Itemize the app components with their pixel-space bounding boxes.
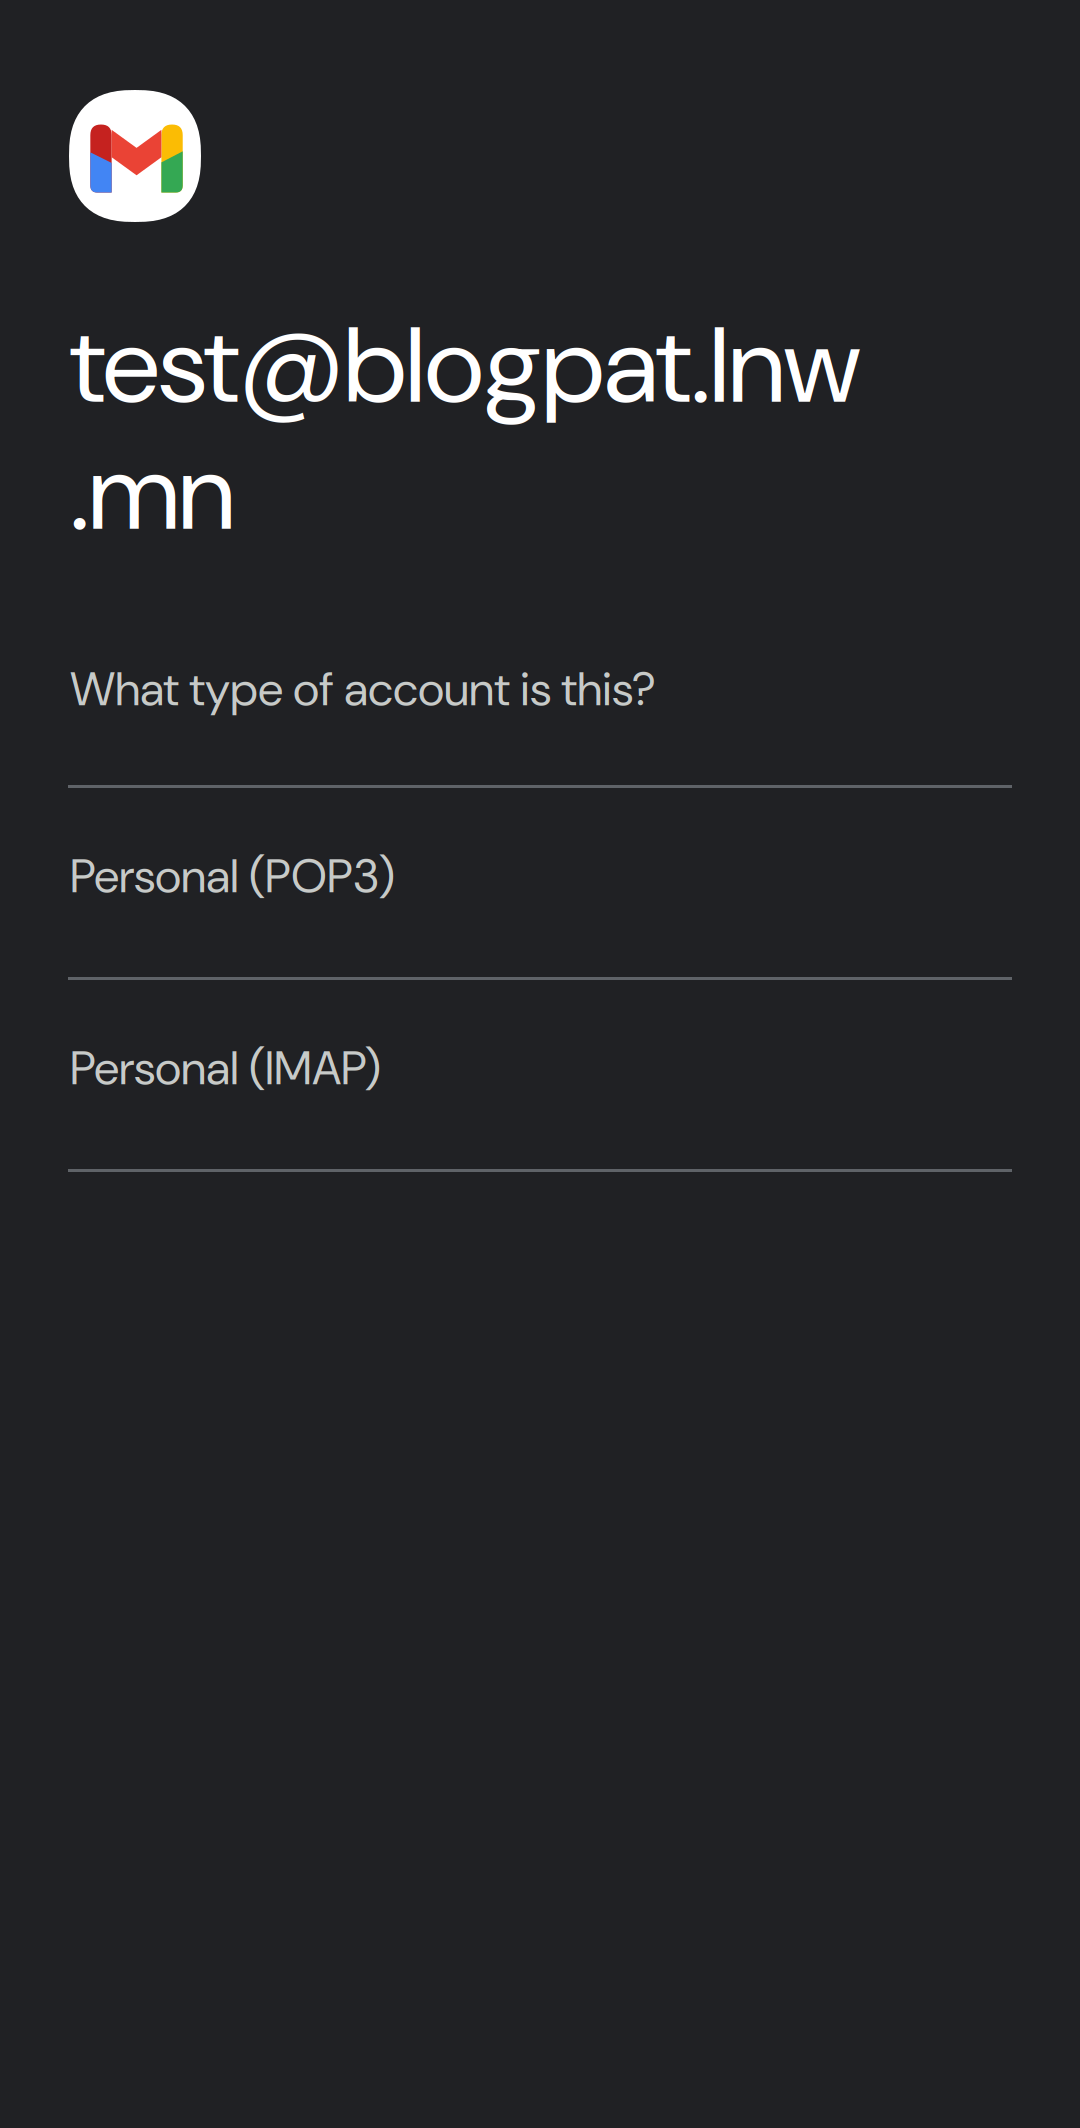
button[interactable]: Personal (IMAP)	[68, 977, 1012, 1172]
staticText: Personal (IMAP)	[70, 1038, 381, 1099]
staticText: .mn	[70, 423, 234, 562]
button[interactable]: Personal (POP3)	[68, 785, 1012, 980]
staticText: test@blogpat.lnw	[70, 296, 860, 435]
staticText: What type of account is this?	[70, 659, 656, 720]
staticText: Personal (POP3)	[70, 846, 395, 907]
